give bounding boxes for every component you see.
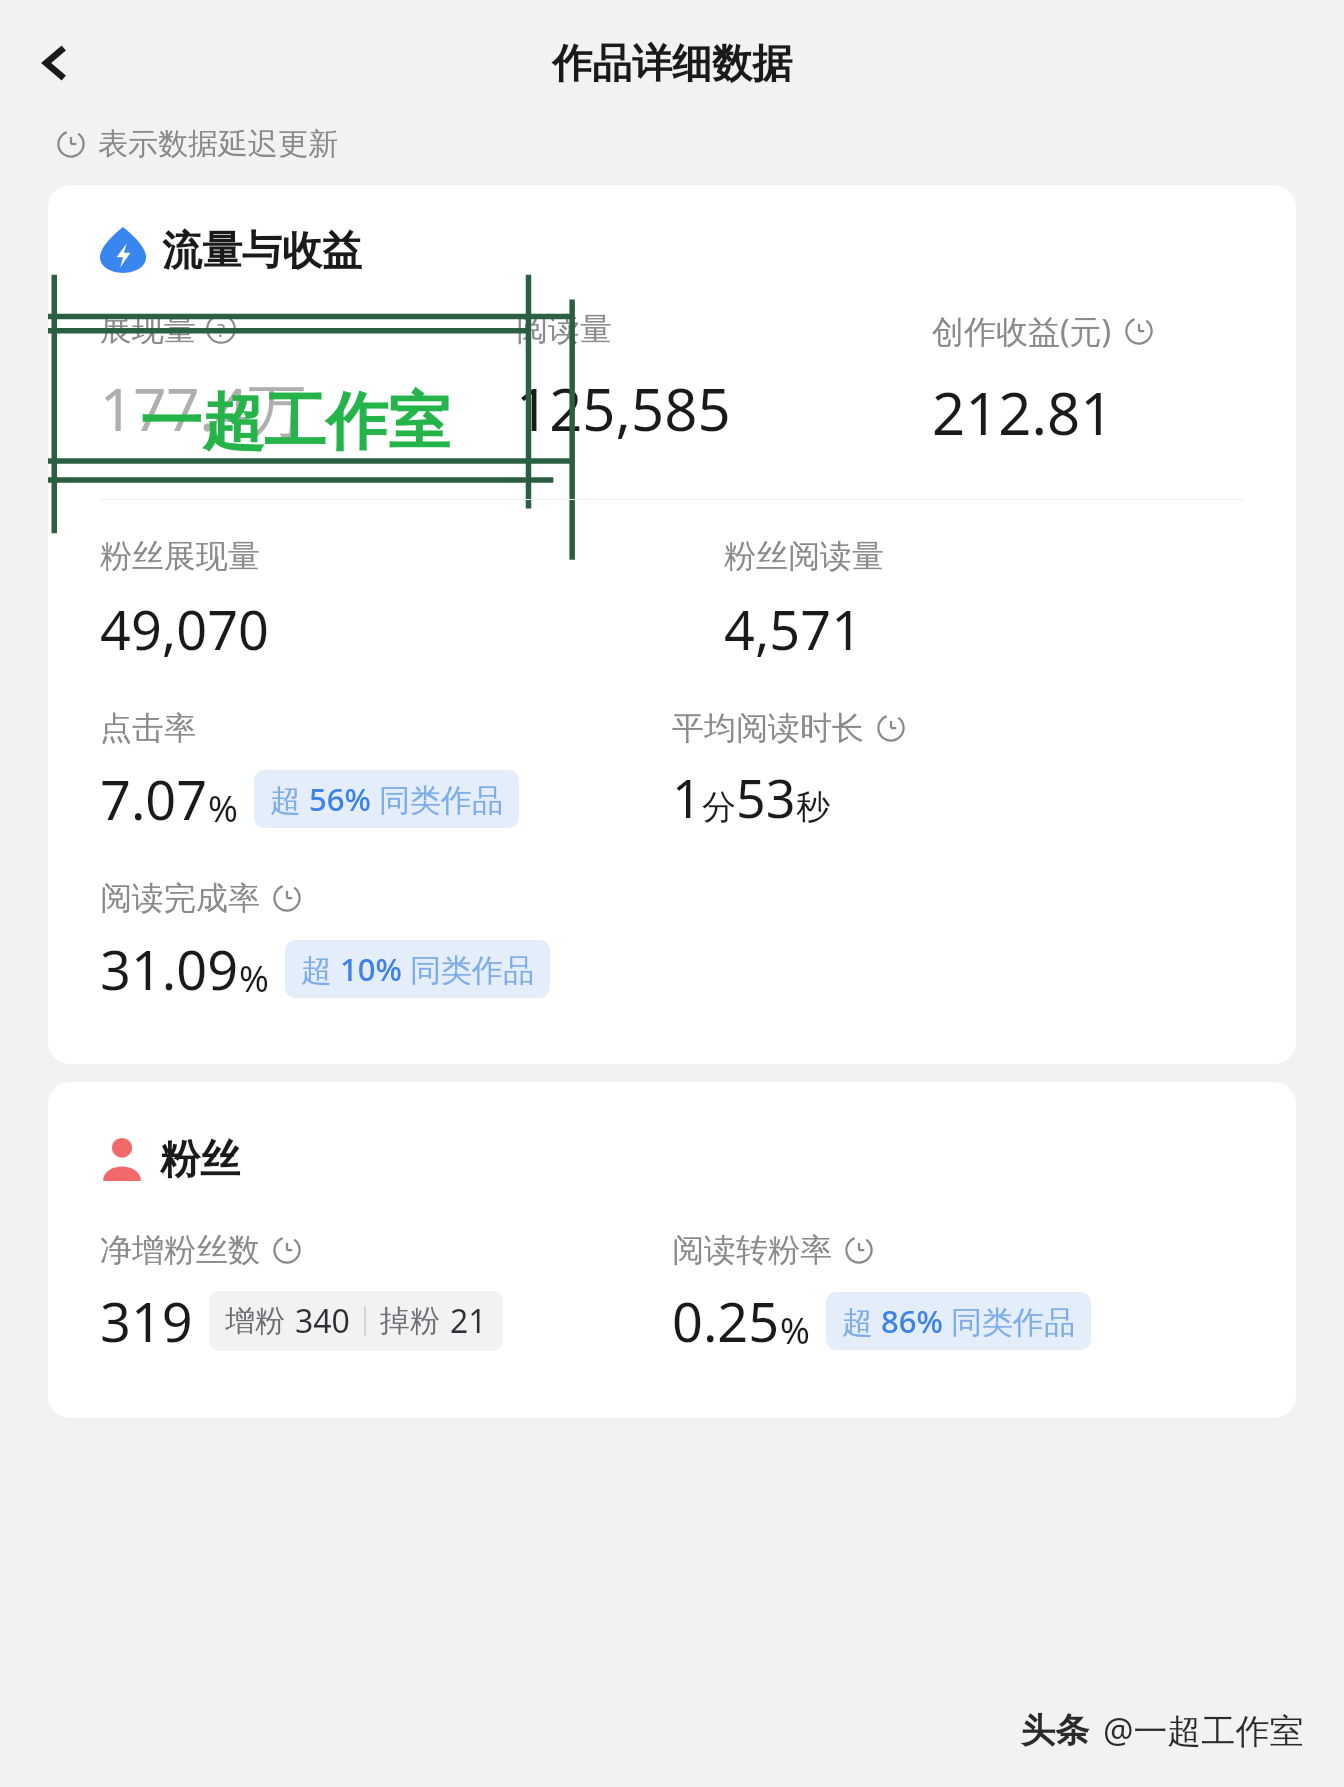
staticText: 点击率 [100, 708, 196, 748]
staticText: 创作收益(元) [932, 309, 1112, 353]
staticText: 0.25 [672, 1284, 780, 1358]
staticText: 177.4万 [100, 369, 307, 448]
staticText: 展现量 [100, 309, 196, 349]
staticText: 分 [702, 786, 736, 829]
button[interactable]: 超 86% 同类作品 [826, 1292, 1091, 1350]
button[interactable]: 超 10% 同类作品 [285, 940, 550, 998]
staticText: % [239, 954, 269, 1003]
staticText: 掉粉 [380, 1302, 440, 1340]
staticText: 31.09 [100, 932, 239, 1006]
staticText: 作品详细数据 [552, 38, 792, 88]
button[interactable]: 增粉 [209, 1291, 503, 1351]
staticText: 粉丝展现量 [100, 536, 260, 576]
staticText: % [208, 784, 238, 833]
staticText: 流量与收益 [162, 225, 362, 275]
staticText: 增粉 [225, 1302, 285, 1340]
staticText: 超 10% 同类作品 [301, 948, 534, 990]
staticText: 头条 [1021, 1709, 1089, 1752]
staticText: @一超工作室 [1103, 1707, 1304, 1753]
staticText: 表示数据延迟更新 [98, 125, 338, 163]
staticText: 粉丝 [160, 1134, 240, 1184]
staticText: 阅读量 [516, 309, 612, 349]
staticText: 一超工作室 [140, 383, 450, 461]
staticText: 21 [450, 1299, 487, 1343]
staticText: 秒 [796, 786, 830, 829]
staticText: 7.07 [100, 762, 208, 836]
staticText: 53 [736, 762, 796, 833]
staticText: 1 [672, 762, 702, 833]
staticText: 49,070 [100, 592, 269, 666]
button[interactable]: Back [22, 28, 92, 98]
staticText: 212.81 [932, 373, 1114, 452]
button[interactable]: 超 56% 同类作品 [254, 770, 519, 828]
staticText: 4,571 [724, 592, 863, 666]
staticText: 阅读完成率 [100, 878, 260, 918]
staticText: % [780, 1306, 810, 1355]
staticText: 超 86% 同类作品 [842, 1300, 1075, 1342]
staticText: 超 56% 同类作品 [270, 778, 503, 820]
staticText: 319 [100, 1284, 193, 1358]
staticText: ? [217, 317, 226, 342]
staticText: 340 [295, 1299, 350, 1343]
staticText: 净增粉丝数 [100, 1230, 260, 1270]
staticText: 阅读转粉率 [672, 1230, 832, 1270]
staticText: 125,585 [516, 369, 731, 448]
staticText: 平均阅读时长 [672, 708, 864, 748]
staticText: 粉丝阅读量 [724, 536, 884, 576]
